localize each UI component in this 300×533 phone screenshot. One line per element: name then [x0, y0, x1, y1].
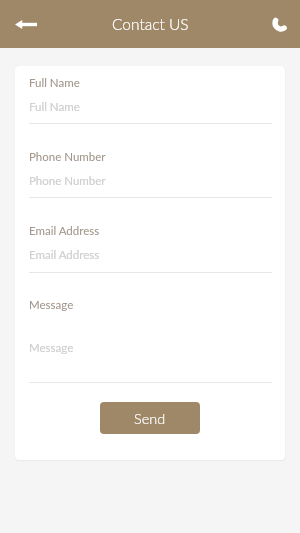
button[interactable]: Send: [100, 402, 200, 434]
staticText: Message: [29, 341, 74, 355]
staticText: Phone Number: [29, 150, 106, 164]
button[interactable]: Phone Number: [29, 174, 272, 198]
staticText: Full Name: [29, 76, 80, 90]
staticText: Phone Number: [29, 174, 106, 188]
button[interactable]: Call: [264, 6, 298, 40]
staticText: Contact US: [112, 15, 189, 34]
staticText: Email Address: [29, 248, 100, 262]
staticText: Send: [134, 410, 166, 427]
staticText: Message: [29, 298, 74, 312]
staticText: Email Address: [29, 224, 100, 238]
button[interactable]: Message: [29, 341, 272, 383]
button[interactable]: Full Name: [29, 100, 272, 124]
button[interactable]: Email Address: [29, 248, 272, 273]
staticText: Full Name: [29, 100, 80, 114]
button[interactable]: Back: [9, 7, 43, 41]
